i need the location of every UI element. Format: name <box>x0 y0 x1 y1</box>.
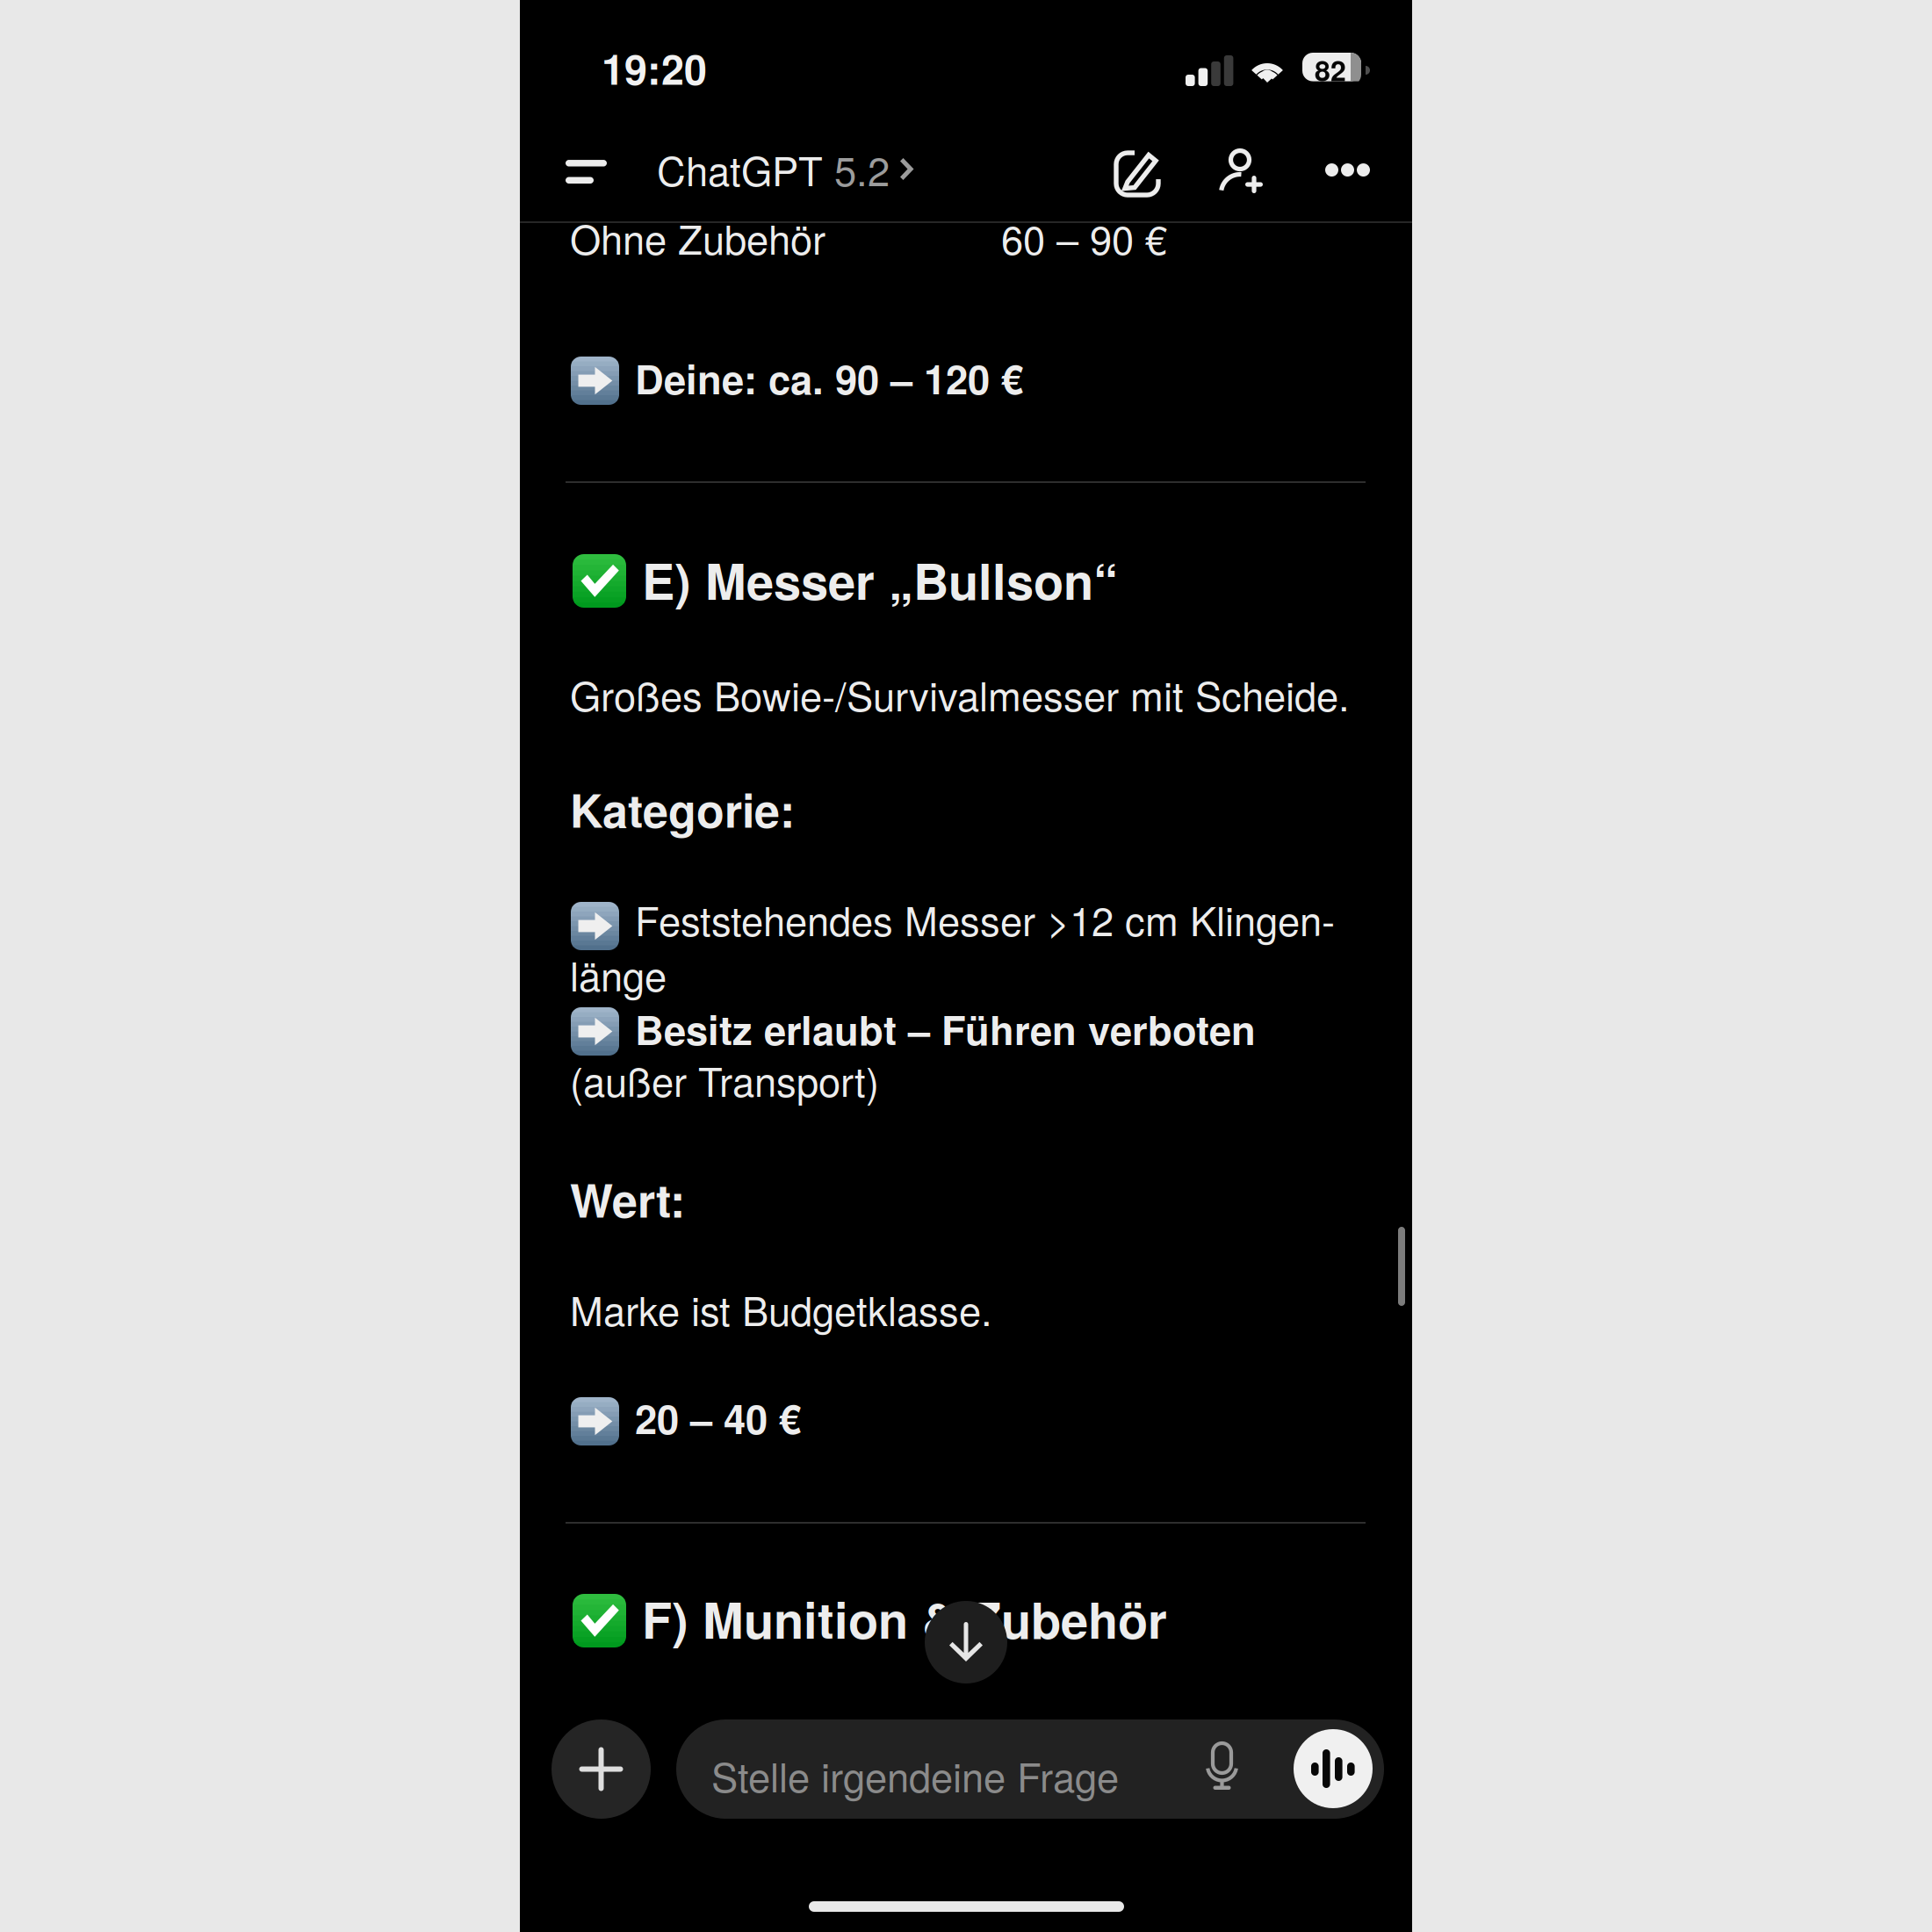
staticText: länge <box>570 946 667 1003</box>
staticText: Besitz erlaubt – Führen verboten <box>635 1000 1256 1057</box>
button[interactable]: Sidebar <box>543 128 630 215</box>
button[interactable]: Dictate <box>1196 1718 1259 1816</box>
staticText: 60 – 90 € <box>1001 209 1167 266</box>
staticText: 19:20 <box>602 39 707 97</box>
staticText: ChatGPT <box>657 141 823 198</box>
staticText: E) Messer „Bullson“ <box>642 544 1118 615</box>
button[interactable]: Add attachment <box>551 1719 651 1819</box>
button[interactable]: More options <box>1314 132 1381 208</box>
button[interactable]: Scroll to bottom <box>925 1601 1007 1683</box>
staticText: Deine: ca. 90 – 120 € <box>635 350 1023 407</box>
staticText: Großes Bowie-/Survivalmesser mit Scheide… <box>570 666 1350 723</box>
button[interactable]: New chat <box>1104 129 1171 219</box>
staticText: 5.2 <box>823 141 890 198</box>
button[interactable]: Add people <box>1206 126 1278 215</box>
staticText: Stelle irgendeine Frage <box>711 1747 1119 1804</box>
staticText: Marke ist Budgetklasse. <box>570 1280 992 1337</box>
button[interactable]: ChatGPT <box>657 119 914 219</box>
staticText: Feststehendes Messer >12 cm Klingen- <box>635 890 1335 947</box>
staticText: 20 – 40 € <box>635 1389 801 1446</box>
button[interactable]: Voice mode <box>1294 1729 1373 1808</box>
staticText: Kategorie: <box>570 776 795 842</box>
staticText: Ohne Zubehör <box>570 209 825 266</box>
staticText: Wert: <box>570 1166 685 1232</box>
staticText: 82 <box>1315 50 1346 90</box>
staticText: F) Munition & Zubehör <box>642 1583 1167 1654</box>
staticText: (außer Transport) <box>570 1051 879 1108</box>
